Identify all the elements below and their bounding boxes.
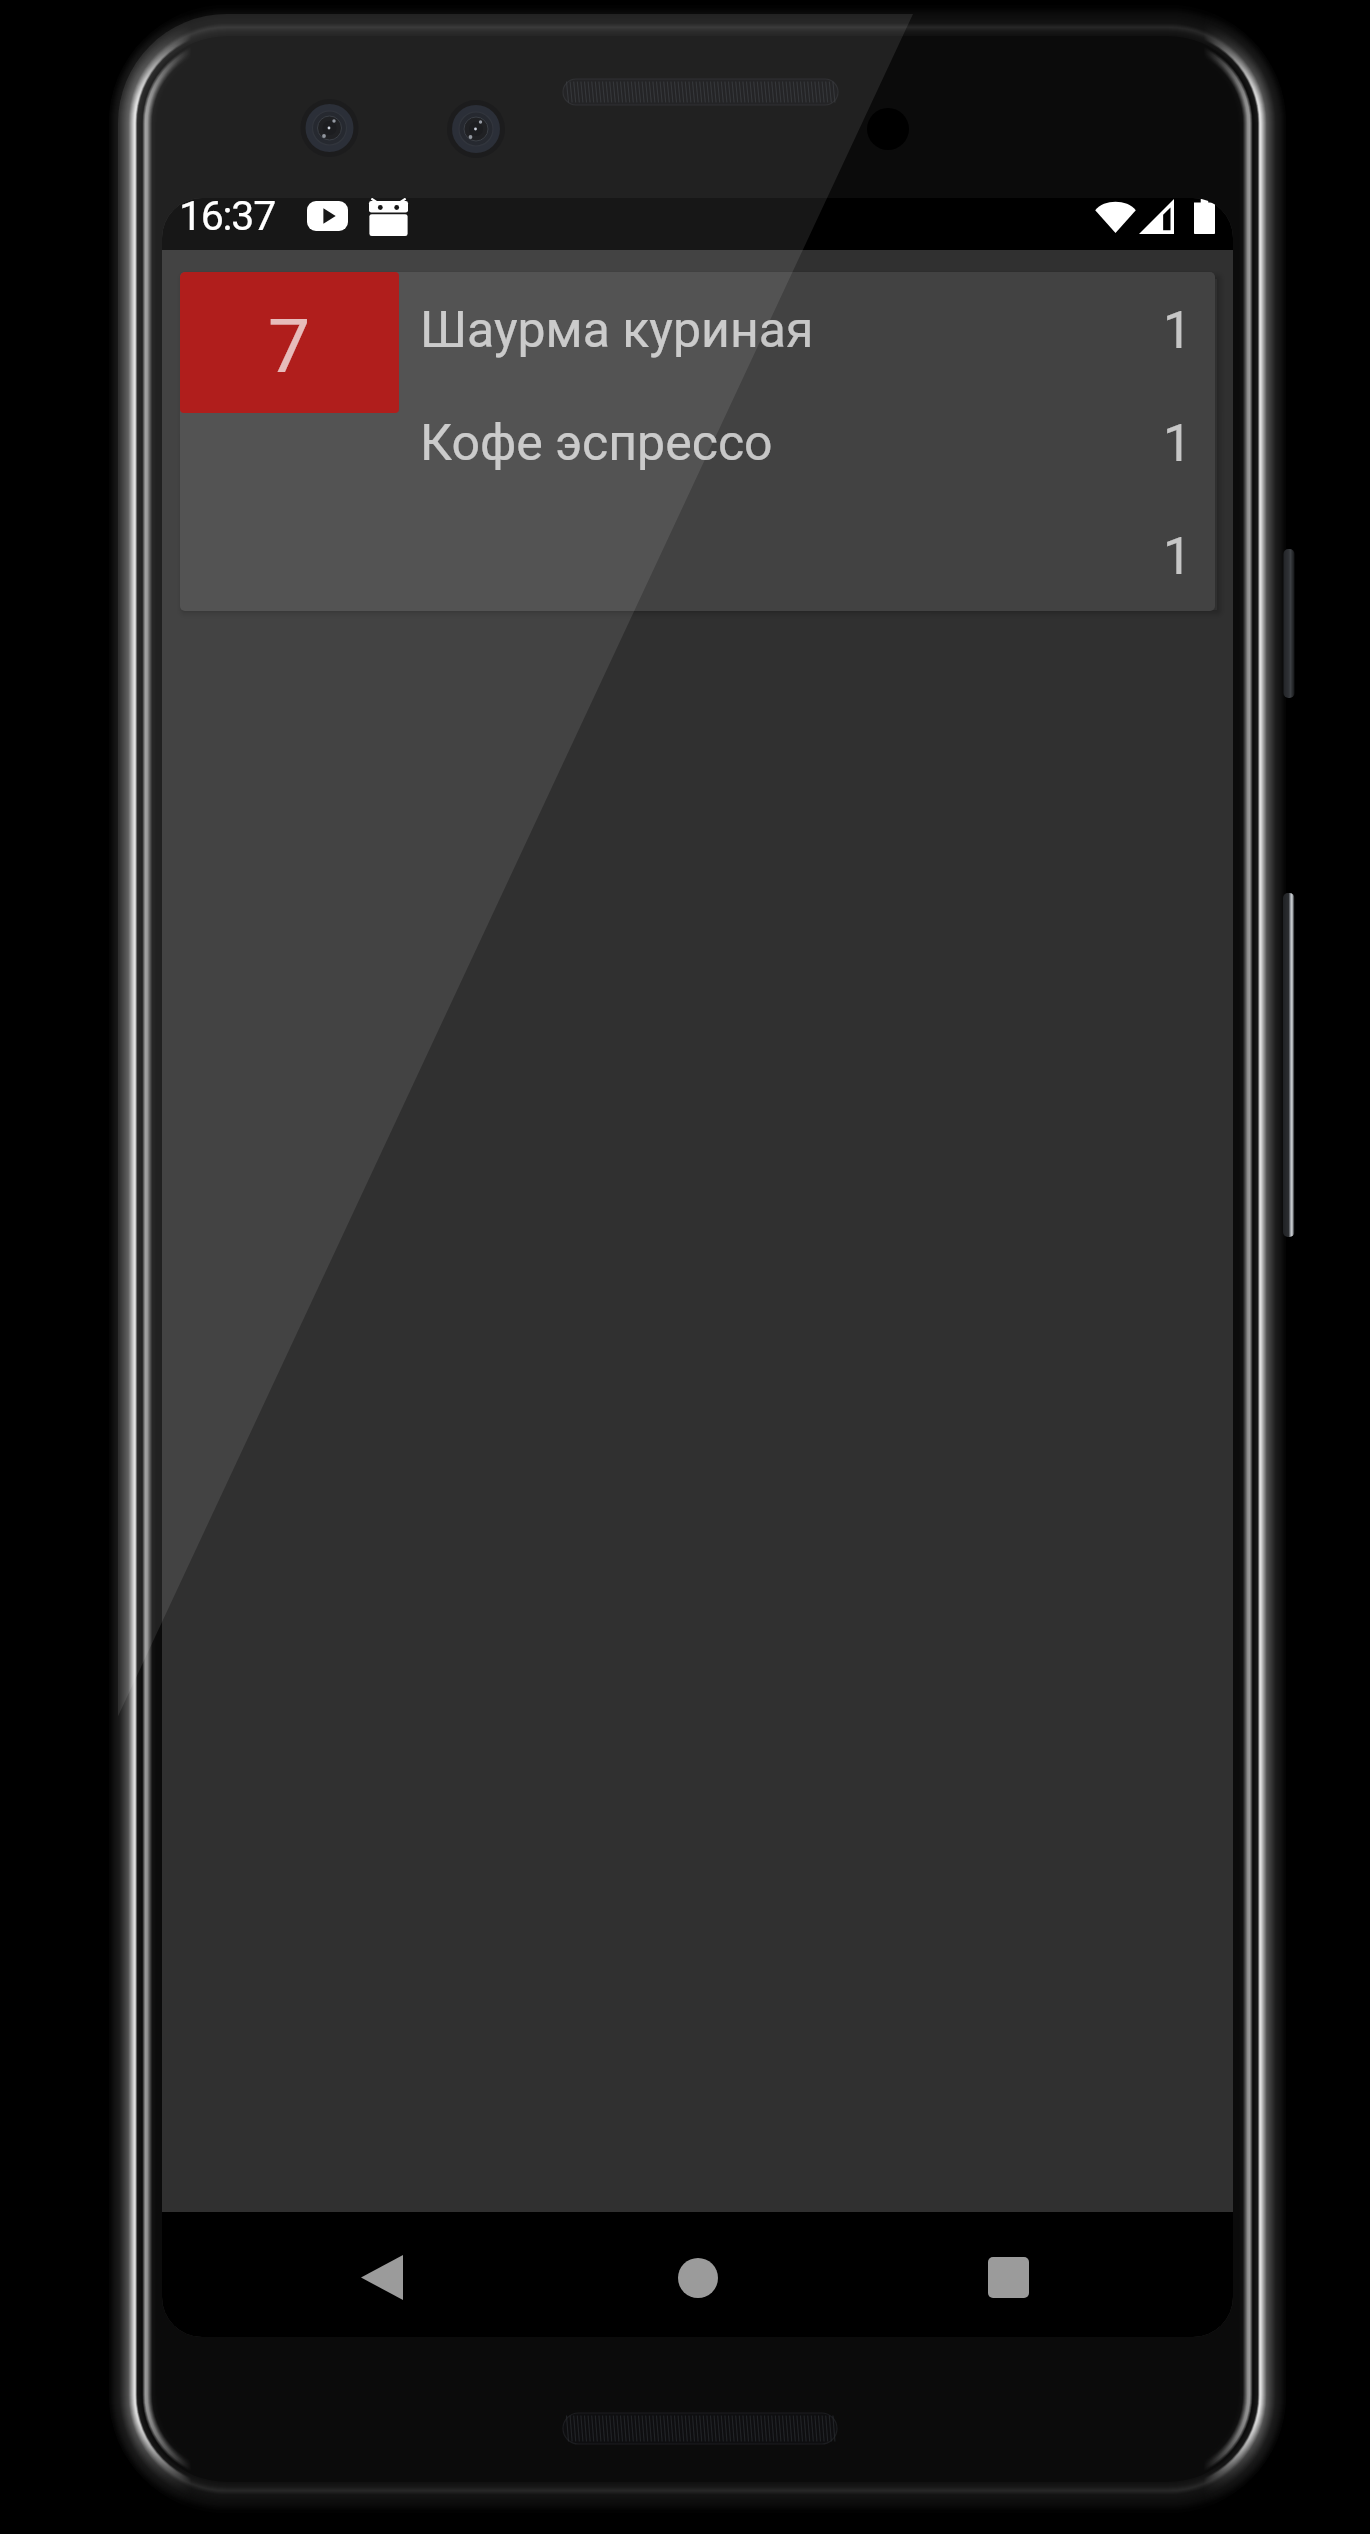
staticText: 1 <box>1163 414 1192 474</box>
button[interactable]: Recents <box>946 2218 1071 2337</box>
staticText: 1 <box>1163 527 1192 587</box>
button[interactable]: Back <box>319 2218 444 2337</box>
button[interactable]: 7 <box>180 272 1215 611</box>
staticText: 16:37 <box>179 198 275 240</box>
staticText: Шаурма куриная <box>420 301 814 360</box>
staticText: 7 <box>268 302 311 390</box>
button[interactable]: Home <box>635 2218 760 2337</box>
staticText: Кофе эспрессо <box>420 414 773 473</box>
staticText: 1 <box>1163 301 1192 361</box>
